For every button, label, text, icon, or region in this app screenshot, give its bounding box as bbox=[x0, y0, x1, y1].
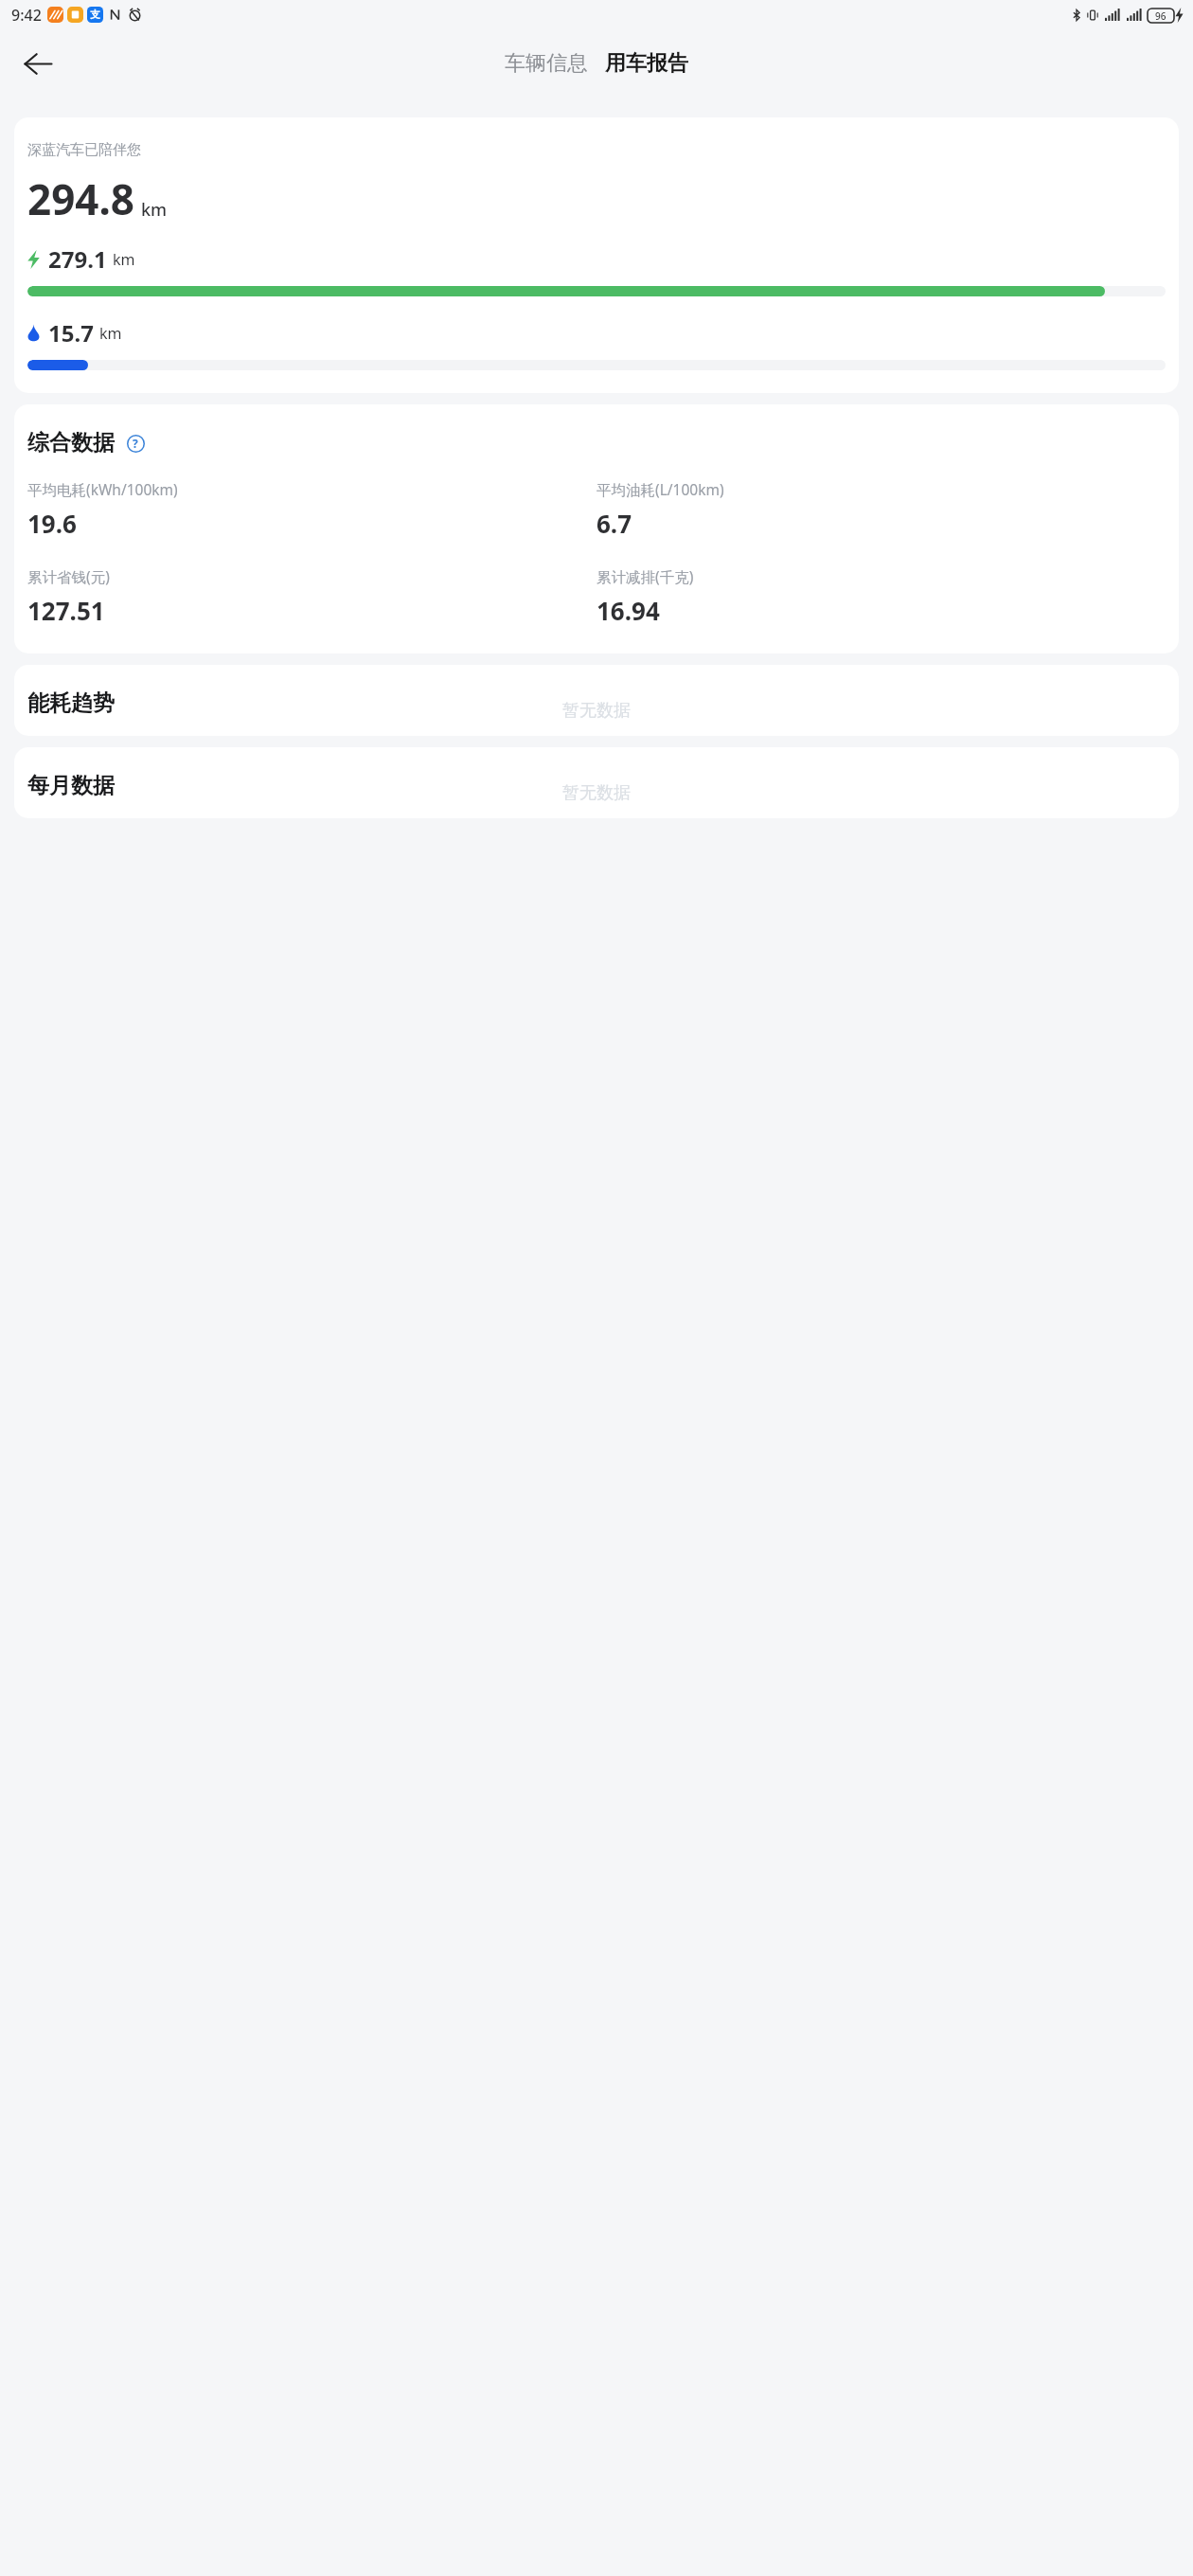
staticText: 9:42 bbox=[11, 5, 42, 26]
staticText: 用车报告 bbox=[605, 50, 688, 77]
button[interactable]: 用车报告 bbox=[600, 45, 693, 81]
staticText: km bbox=[141, 198, 168, 222]
button[interactable]: 综合数据 bbox=[14, 404, 1179, 653]
staticText: 能耗趋势 bbox=[27, 689, 115, 717]
staticText: 暂无数据 bbox=[562, 782, 631, 804]
staticText: 车辆信息 bbox=[505, 50, 588, 77]
staticText: 每月数据 bbox=[27, 772, 115, 799]
staticText: 暂无数据 bbox=[562, 700, 631, 722]
staticText: 累计减排(千克) bbox=[596, 566, 694, 586]
staticText: 15.7 bbox=[48, 317, 94, 349]
staticText: 支 bbox=[90, 9, 100, 21]
staticText: 平均电耗(kWh/100km) bbox=[27, 479, 178, 499]
staticText: 深蓝汽车已陪伴您 bbox=[27, 141, 141, 159]
staticText: 127.51 bbox=[27, 594, 105, 627]
staticText: 累计省钱(元) bbox=[27, 566, 110, 586]
button[interactable]: 深蓝汽车已陪伴您 bbox=[14, 117, 1179, 393]
staticText: 6.7 bbox=[596, 507, 632, 540]
staticText: 294.8 bbox=[27, 170, 135, 227]
staticText: 19.6 bbox=[27, 507, 77, 540]
staticText: 279.1 bbox=[48, 243, 107, 275]
button[interactable]: Back bbox=[11, 37, 64, 90]
button[interactable]: 能耗趋势 bbox=[14, 665, 1179, 736]
staticText: 16.94 bbox=[596, 594, 660, 627]
staticText: km bbox=[99, 323, 122, 344]
button[interactable]: 每月数据 bbox=[14, 747, 1179, 818]
button[interactable]: 说明 bbox=[123, 431, 148, 456]
staticText: ? bbox=[133, 436, 138, 451]
staticText: 综合数据 bbox=[27, 429, 115, 456]
button[interactable]: 车辆信息 bbox=[500, 45, 593, 81]
staticText: km bbox=[113, 249, 135, 270]
staticText: 平均油耗(L/100km) bbox=[596, 479, 724, 499]
staticText: 96 bbox=[1155, 9, 1166, 23]
